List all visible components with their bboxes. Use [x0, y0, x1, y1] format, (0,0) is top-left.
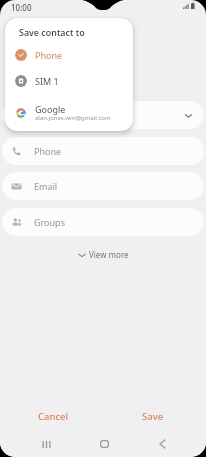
button[interactable]: Recent apps — [32, 434, 60, 454]
other: Expand account selector — [184, 111, 193, 120]
staticText: SIM 1 — [35, 75, 59, 87]
button[interactable]: Groups — [2, 208, 204, 236]
button[interactable]: Email — [2, 172, 204, 200]
button[interactable]: Home — [90, 434, 118, 454]
button[interactable]: Expand account selector — [2, 101, 204, 129]
button[interactable]: Back — [148, 434, 176, 454]
button[interactable]: Save — [133, 404, 173, 428]
staticText: Phone — [34, 145, 62, 157]
staticText: Cancel — [38, 410, 69, 423]
staticText: Google — [35, 103, 66, 115]
staticText: Email — [34, 180, 58, 192]
staticText: View more — [89, 249, 129, 260]
staticText: Phone — [35, 49, 63, 61]
button[interactable]: Phone — [5, 42, 133, 68]
button[interactable]: View more — [72, 246, 135, 263]
staticText: Save — [142, 410, 164, 423]
button[interactable]: Google — [5, 100, 133, 131]
button[interactable]: SIM 1 — [5, 68, 133, 94]
staticText: Save contact to — [19, 26, 85, 38]
staticText: 10:00 — [11, 2, 32, 13]
button[interactable]: Phone — [2, 137, 204, 165]
staticText: alan.jones.wm@gmail.com — [35, 114, 111, 122]
button[interactable]: Cancel — [29, 404, 77, 428]
staticText: Groups — [34, 216, 65, 228]
